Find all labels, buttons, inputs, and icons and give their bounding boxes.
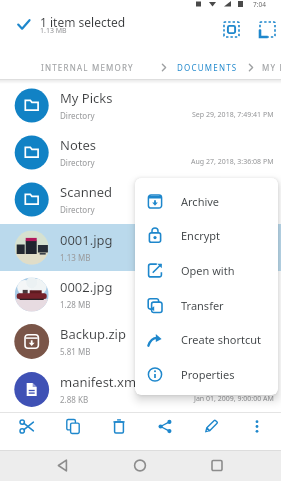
button[interactable]: [147, 413, 183, 449]
staticText: Archive: [181, 194, 220, 209]
staticText: MY PICKS: [262, 62, 281, 73]
staticText: Scanned: [60, 183, 113, 201]
staticText: Notes: [60, 136, 96, 154]
staticText: Transfer: [181, 298, 224, 313]
button[interactable]: 0001.jpg: [0, 224, 281, 271]
staticText: Open with: [181, 263, 235, 278]
button[interactable]: Properties: [135, 357, 278, 392]
staticText: Directory: [60, 110, 95, 121]
staticText: Encrypt: [181, 228, 221, 243]
button[interactable]: [101, 413, 137, 449]
button[interactable]: [45, 450, 81, 481]
staticText: 5.81 MB: [60, 346, 91, 357]
staticText: Directory: [60, 157, 95, 168]
button[interactable]: [55, 413, 91, 449]
button[interactable]: [239, 413, 275, 449]
staticText: Aug 27, 2018, 3:36:08 PM: [191, 157, 274, 167]
button[interactable]: [199, 450, 235, 481]
staticText: DOCUMENTS: [177, 62, 238, 73]
staticText: Sep 12, 2018, 1:05:22 PM: [192, 204, 274, 214]
button[interactable]: [8, 12, 40, 40]
button[interactable]: [193, 413, 229, 449]
staticText: 1.28 MB: [60, 299, 91, 310]
staticText: INTERNAL MEMORY: [41, 62, 134, 73]
staticText: 0002.jpg: [60, 278, 113, 296]
staticText: Create shortcut: [181, 332, 261, 347]
staticText: Oct 01, 2018, 8:22:05 AM: [192, 299, 274, 309]
button[interactable]: DOCUMENTS: [172, 56, 233, 78]
button[interactable]: Archive: [135, 184, 278, 219]
staticText: 0001.jpg: [60, 231, 113, 249]
staticText: 7:04: [253, 0, 266, 9]
button[interactable]: Open with: [135, 253, 278, 288]
button[interactable]: Backup.zip: [0, 318, 281, 365]
staticText: Jan 01, 2009, 9:00:00 AM: [194, 394, 274, 404]
staticText: manifest.xml: [60, 373, 140, 391]
button[interactable]: [218, 16, 245, 43]
staticText: 1.13 MB: [40, 26, 67, 36]
button[interactable]: Notes: [0, 129, 281, 176]
staticText: 1 item selected: [40, 14, 126, 30]
staticText: Sep 29, 2018, 7:49:41 PM: [192, 110, 274, 120]
button[interactable]: Scanned: [0, 176, 281, 223]
button[interactable]: Encrypt: [135, 218, 278, 253]
button[interactable]: Create shortcut: [135, 322, 278, 357]
button[interactable]: INTERNAL MEMORY: [36, 56, 129, 78]
button[interactable]: [122, 450, 158, 481]
staticText: 2.88 KB: [60, 394, 89, 405]
button[interactable]: 0002.jpg: [0, 271, 281, 318]
staticText: 1.13 MB: [60, 252, 91, 263]
staticText: Properties: [181, 367, 235, 382]
button[interactable]: MY PICKS: [257, 56, 281, 78]
staticText: Backup.zip: [60, 325, 126, 343]
button[interactable]: [9, 413, 45, 449]
button[interactable]: Transfer: [135, 288, 278, 323]
button[interactable]: My Picks: [0, 82, 281, 129]
staticText: Directory: [60, 204, 95, 215]
button[interactable]: [254, 16, 281, 43]
button[interactable]: manifest.xml: [0, 366, 281, 413]
staticText: My Picks: [60, 89, 113, 107]
